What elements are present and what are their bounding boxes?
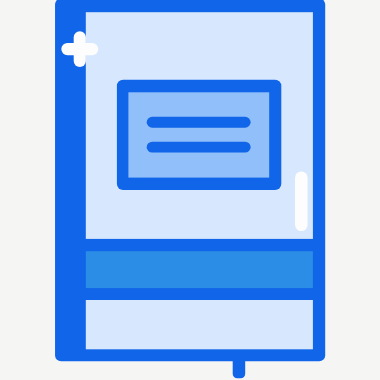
button[interactable]: Notebook <box>0 0 380 380</box>
